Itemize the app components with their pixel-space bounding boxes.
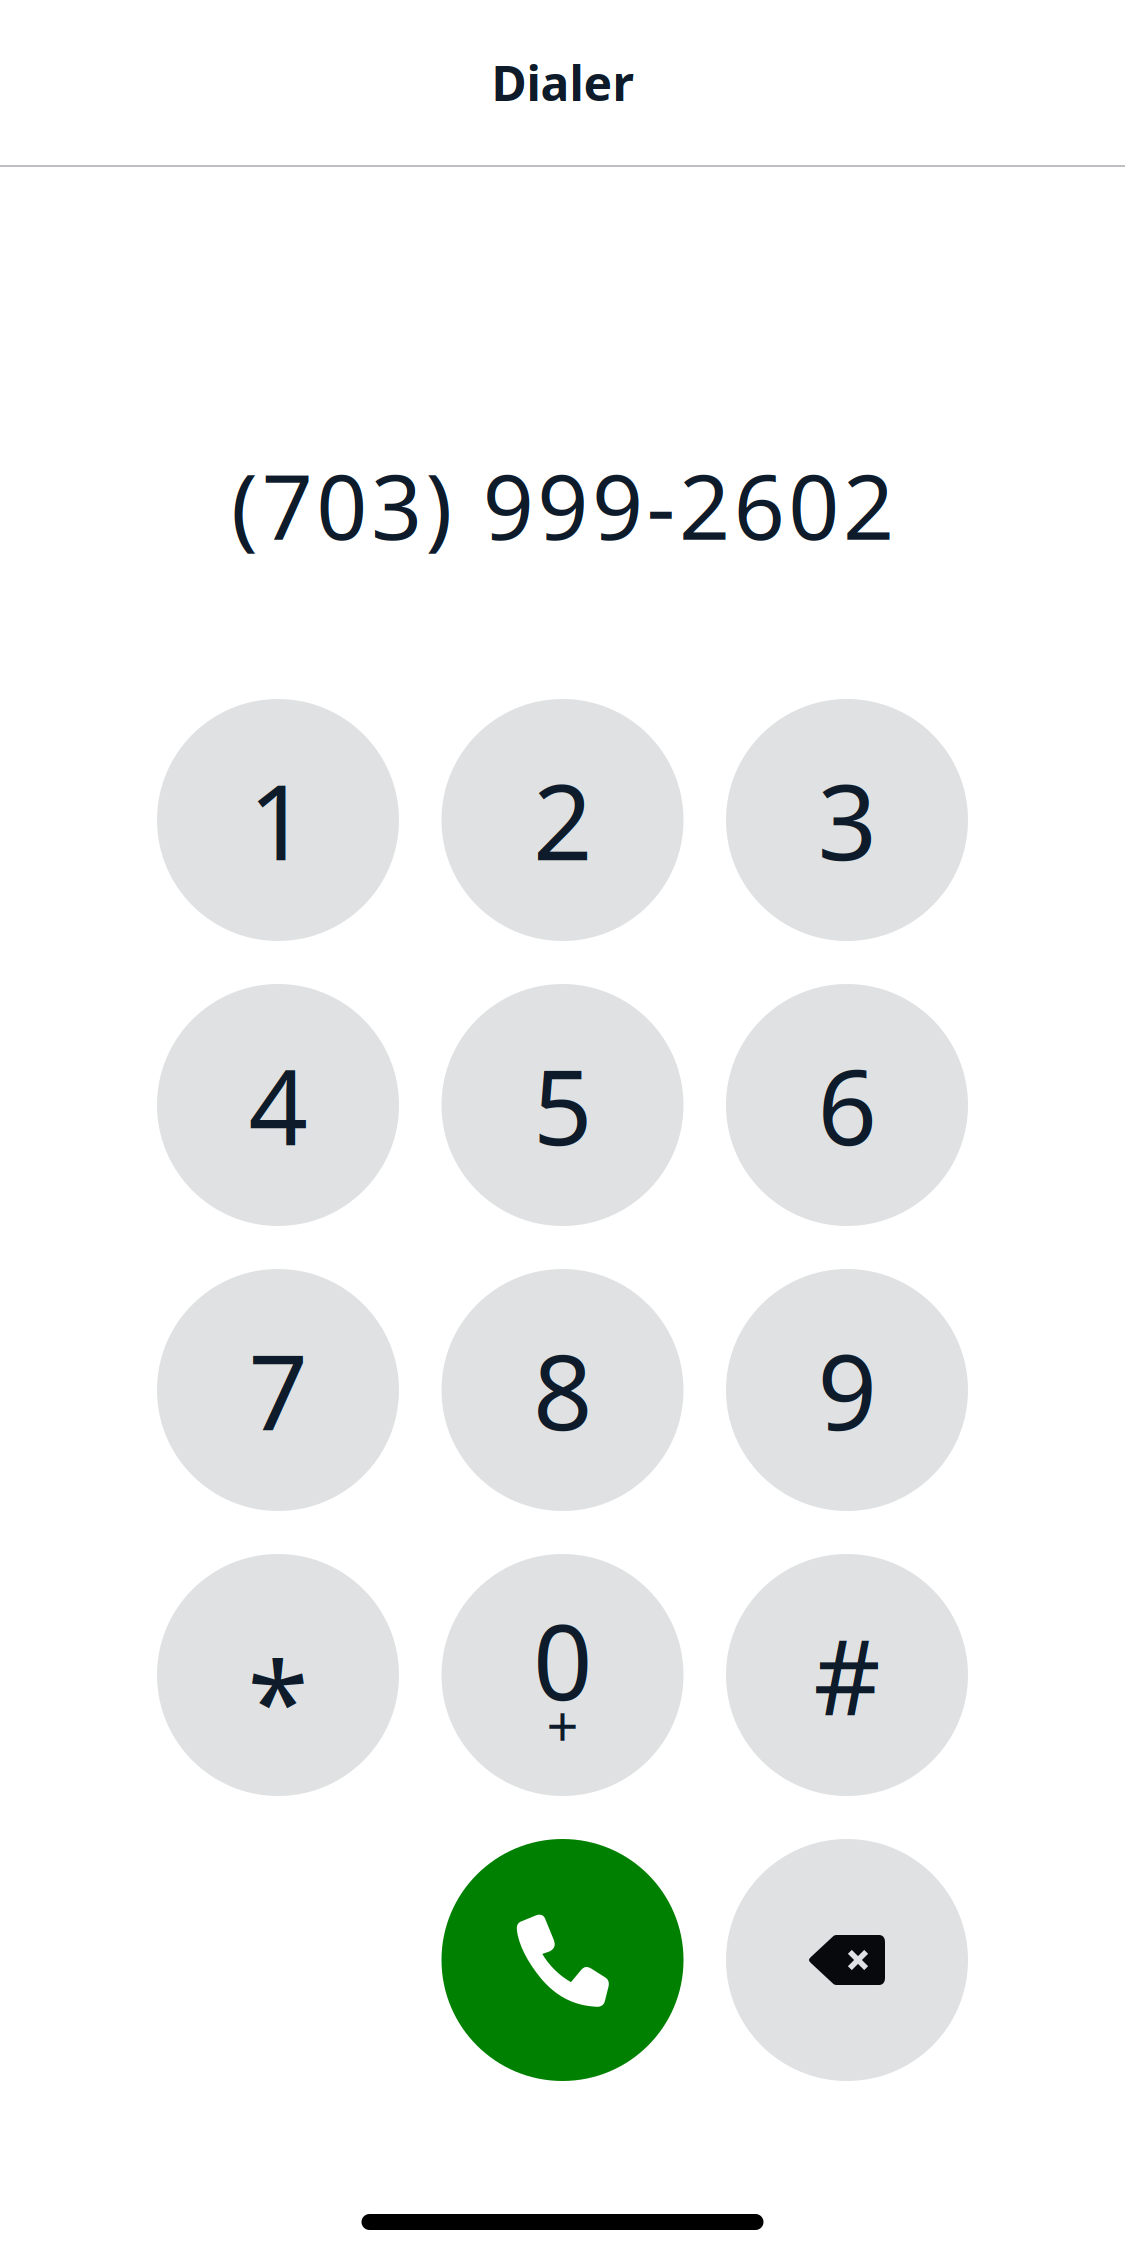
staticText: 3 (817, 751, 876, 889)
button[interactable]: Call (441, 1839, 683, 2081)
staticText: 1 (248, 751, 307, 889)
button[interactable]: 2 (441, 699, 683, 941)
button[interactable]: 7 (157, 1269, 399, 1511)
button[interactable]: 1 (157, 699, 399, 941)
button[interactable]: 3 (726, 699, 968, 941)
staticText: 2 (533, 751, 592, 889)
staticText: 5 (533, 1036, 592, 1174)
button[interactable]: 9 (726, 1269, 968, 1511)
button[interactable]: 6 (726, 984, 968, 1226)
button[interactable]: Delete (726, 1839, 968, 2081)
staticText: 9 (817, 1321, 876, 1459)
button[interactable]: # (726, 1554, 968, 1796)
staticText: 6 (817, 1036, 876, 1174)
staticText: # (813, 1606, 880, 1744)
button[interactable]: 4 (157, 984, 399, 1226)
staticText: * (247, 1626, 308, 1773)
button[interactable]: 8 (441, 1269, 683, 1511)
staticText: Dialer (491, 51, 633, 114)
staticText: 8 (533, 1321, 592, 1459)
staticText: 4 (248, 1036, 307, 1174)
button[interactable]: 0 (441, 1554, 683, 1796)
staticText: (703) 999-2602 (231, 446, 894, 564)
staticText: 0 (533, 1591, 592, 1729)
button[interactable]: 5 (441, 984, 683, 1226)
staticText: + (546, 1688, 578, 1762)
staticText: 7 (248, 1321, 307, 1459)
button[interactable]: * (157, 1554, 399, 1796)
